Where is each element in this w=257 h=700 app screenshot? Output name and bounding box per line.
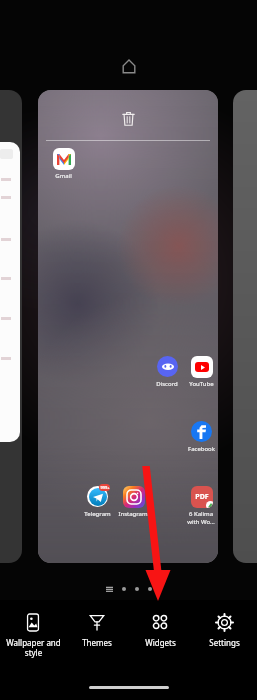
staticText: Telegram [84, 510, 111, 518]
button[interactable]: Facebook [184, 420, 218, 453]
button[interactable]: Gmail [46, 147, 80, 180]
button[interactable]: PDF [184, 485, 218, 526]
button[interactable]: Remove page [117, 107, 139, 129]
button[interactable] [0, 90, 22, 563]
staticText: YouTube [189, 380, 214, 388]
button[interactable]: Remove page [38, 90, 218, 563]
staticText: Wallpaper and style [6, 637, 61, 658]
staticText: Facebook [188, 445, 215, 453]
button[interactable]: Settings [193, 612, 255, 648]
staticText: Widgets [145, 637, 176, 648]
button[interactable] [233, 90, 257, 563]
staticText: Settings [209, 637, 240, 648]
button[interactable]: 999+ [80, 485, 114, 518]
button[interactable]: Instagram [116, 485, 150, 518]
staticText: Discord [156, 380, 178, 388]
staticText: Gmail [55, 172, 72, 180]
staticText: PDF [195, 492, 209, 502]
staticText: 999+ [100, 485, 110, 490]
staticText: Themes [82, 637, 112, 648]
button[interactable]: Wallpaper and style [2, 612, 64, 658]
staticText: Instagram [118, 510, 148, 518]
button[interactable]: Widgets [129, 612, 191, 648]
button[interactable]: Discord [150, 355, 184, 388]
button[interactable]: YouTube [184, 355, 218, 388]
staticText: 6 Kalima with Wo… [187, 510, 215, 526]
button[interactable]: Themes [66, 612, 128, 648]
